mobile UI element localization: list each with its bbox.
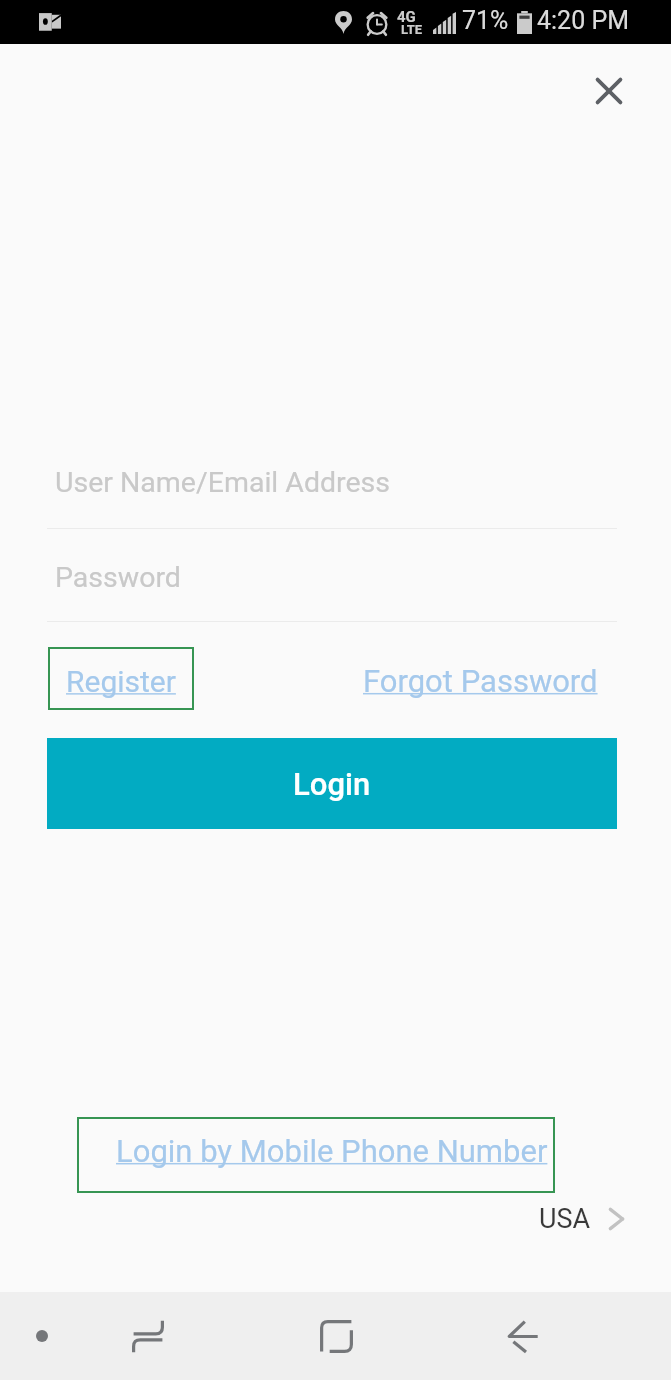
staticText: 4G <box>397 8 416 26</box>
staticText: Login <box>293 766 371 802</box>
button[interactable]: User Name/Email Address <box>47 455 617 529</box>
button[interactable]: USA <box>539 1201 625 1237</box>
button[interactable]: Register <box>48 647 194 710</box>
staticText: 71% <box>462 6 509 35</box>
button[interactable]: Menu <box>11 1292 73 1380</box>
staticText: Login by Mobile Phone Number <box>116 1133 548 1169</box>
staticText: Forgot Password <box>363 663 598 699</box>
button[interactable]: Close <box>585 67 633 115</box>
button[interactable]: Forgot Password <box>363 655 598 707</box>
button[interactable]: Login by Mobile Phone Number <box>77 1117 555 1193</box>
staticText: 4:20 PM <box>537 6 630 35</box>
button[interactable]: Back <box>491 1292 555 1380</box>
staticText: LTE <box>401 22 423 37</box>
button[interactable]: Login <box>47 738 617 829</box>
staticText: USA <box>539 1203 591 1235</box>
button[interactable]: Recent apps <box>116 1292 180 1380</box>
staticText: Password <box>55 561 181 594</box>
staticText: User Name/Email Address <box>55 466 391 499</box>
staticText: Register <box>66 664 176 699</box>
button[interactable]: Password <box>47 550 617 622</box>
button[interactable]: Home <box>304 1292 368 1380</box>
